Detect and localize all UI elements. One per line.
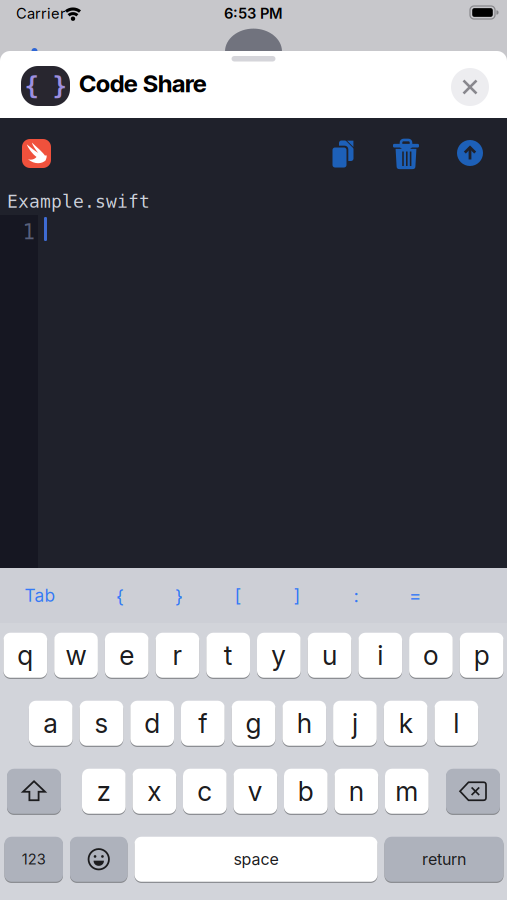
button[interactable]: Language: Swift — [22, 139, 51, 168]
staticText: p — [474, 639, 490, 671]
staticText: Code Share — [79, 69, 207, 98]
button[interactable]: Upload — [450, 133, 490, 173]
button[interactable]: v — [233, 768, 277, 814]
staticText: d — [144, 707, 160, 739]
staticText: f — [198, 707, 207, 739]
button[interactable]: x — [132, 768, 176, 814]
button[interactable]: u — [308, 632, 351, 678]
button[interactable]: c — [183, 768, 227, 814]
button[interactable]: m — [385, 768, 429, 814]
button[interactable]: f — [181, 700, 225, 746]
button[interactable]: Close — [451, 68, 489, 106]
staticText: i — [377, 639, 383, 671]
button[interactable]: t — [206, 632, 250, 678]
staticText: space — [233, 850, 278, 869]
staticText: e — [119, 639, 134, 671]
button[interactable]: w — [54, 632, 98, 678]
button[interactable]: = — [385, 568, 444, 623]
button[interactable]: ] — [267, 568, 326, 623]
button[interactable]: z — [82, 768, 126, 814]
button[interactable]: d — [130, 700, 174, 746]
staticText: u — [322, 639, 337, 671]
staticText: v — [248, 775, 263, 807]
staticText: q — [17, 639, 33, 671]
button[interactable]: o — [409, 632, 453, 678]
staticText: o — [423, 639, 439, 671]
button[interactable]: Paste — [323, 134, 363, 174]
staticText: l — [453, 707, 459, 739]
staticText: [ — [234, 584, 241, 607]
staticText: j — [352, 707, 358, 739]
button[interactable]: Emoji — [70, 836, 127, 882]
button[interactable]: return — [384, 836, 503, 882]
staticText: x — [147, 775, 161, 807]
staticText: r — [172, 639, 182, 671]
staticText: return — [422, 850, 466, 869]
button[interactable]: h — [282, 700, 326, 746]
button[interactable]: p — [460, 632, 503, 678]
button[interactable]: a — [29, 700, 73, 746]
button[interactable]: { — [90, 568, 149, 623]
staticText: Example.swift — [7, 191, 150, 212]
button[interactable]: j — [333, 700, 377, 746]
button[interactable]: i — [358, 632, 402, 678]
button[interactable]: l — [434, 700, 478, 746]
button[interactable]: Delete — [386, 134, 426, 174]
staticText: Tab — [24, 585, 55, 606]
button[interactable]: k — [384, 700, 427, 746]
staticText: { } — [24, 72, 66, 100]
button[interactable]: b — [284, 768, 328, 814]
staticText: s — [94, 707, 108, 739]
button[interactable]: Tab — [0, 568, 80, 623]
button[interactable]: g — [232, 700, 275, 746]
button[interactable]: 123 — [4, 836, 63, 882]
button[interactable]: e — [105, 632, 149, 678]
button[interactable]: [ — [208, 568, 267, 623]
staticText: k — [399, 707, 413, 739]
staticText: Carrier — [16, 4, 66, 22]
button[interactable]: r — [156, 632, 199, 678]
staticText: n — [349, 775, 364, 807]
staticText: } — [175, 584, 183, 607]
staticText: z — [97, 775, 111, 807]
button[interactable]: : — [326, 568, 385, 623]
button[interactable]: Delete — [446, 768, 500, 814]
button[interactable]: y — [257, 632, 301, 678]
staticText: w — [66, 639, 87, 671]
staticText: m — [395, 775, 418, 807]
staticText: g — [246, 707, 262, 739]
button[interactable]: q — [3, 632, 47, 678]
staticText: 1 — [22, 220, 34, 244]
button[interactable]: } — [149, 568, 208, 623]
button[interactable]: n — [334, 768, 378, 814]
button[interactable]: s — [80, 700, 123, 746]
staticText: 123 — [22, 850, 46, 868]
staticText: y — [271, 639, 286, 671]
staticText: ] — [293, 584, 300, 607]
staticText: : — [353, 584, 358, 607]
staticText: b — [298, 775, 314, 807]
staticText: t — [224, 639, 233, 671]
button[interactable]: Shift — [7, 768, 61, 814]
staticText: a — [43, 707, 58, 739]
staticText: h — [297, 707, 312, 739]
staticText: c — [197, 775, 212, 807]
staticText: { — [116, 584, 124, 607]
button[interactable]: space — [134, 836, 377, 882]
staticText: 6:53 PM — [224, 4, 283, 22]
staticText: = — [409, 584, 421, 607]
